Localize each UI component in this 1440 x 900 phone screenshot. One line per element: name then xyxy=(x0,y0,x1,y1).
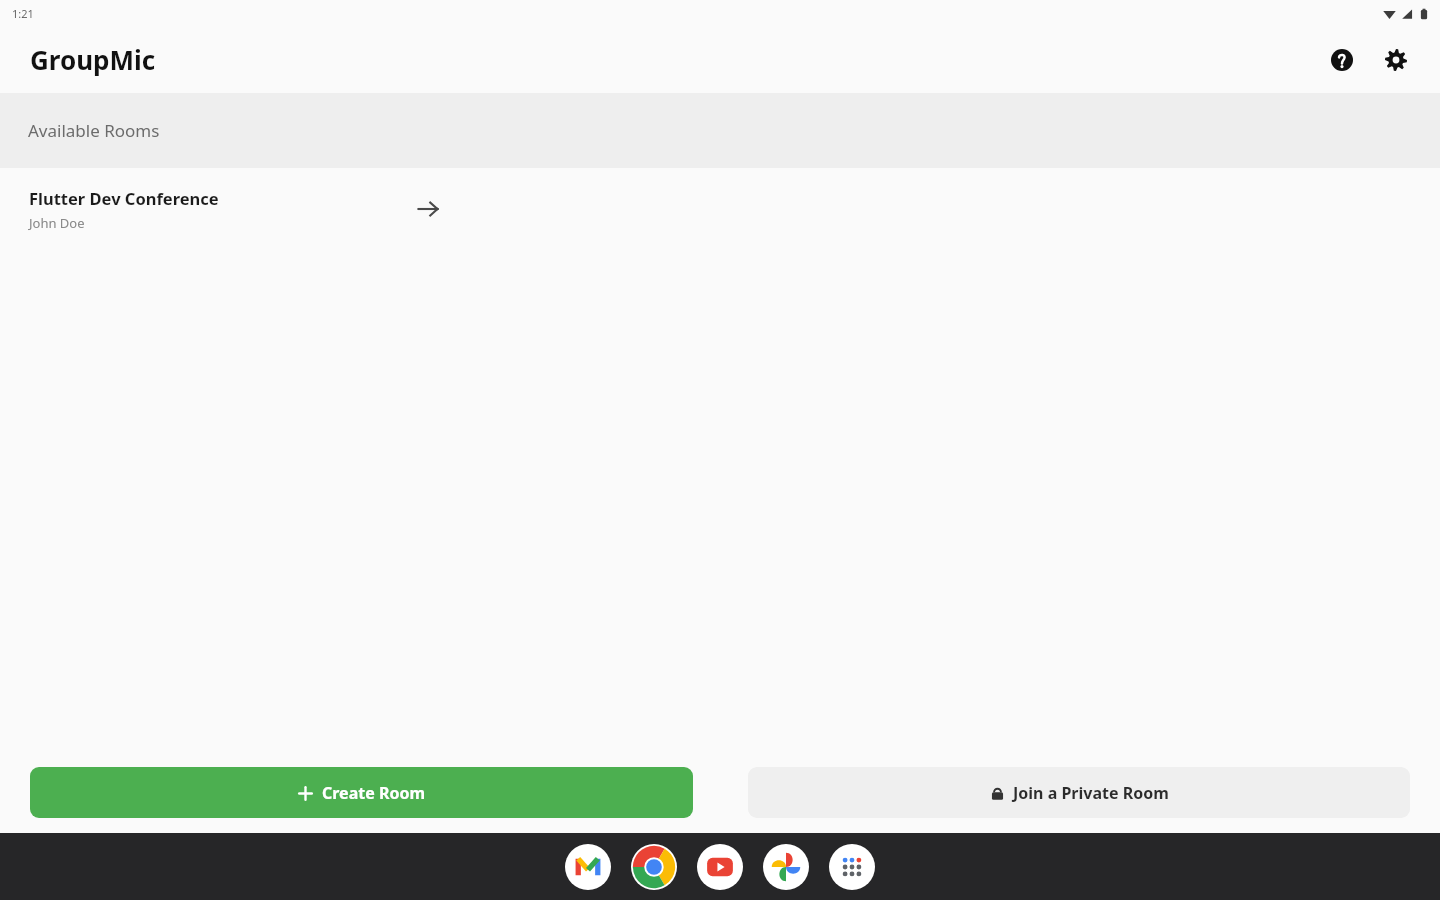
button[interactable]: Settings xyxy=(1372,36,1420,84)
button[interactable]: Chrome xyxy=(630,843,678,891)
button[interactable]: Flutter Dev Conference xyxy=(0,168,1440,250)
button[interactable]: Create Room xyxy=(30,767,693,818)
button[interactable]: All apps xyxy=(828,843,876,891)
button[interactable]: Join a Private Room xyxy=(748,767,1410,818)
staticText: Join a Private Room xyxy=(1013,782,1169,804)
staticText: John Doe xyxy=(29,214,85,232)
button[interactable]: Gmail xyxy=(564,843,612,891)
staticText: Available Rooms xyxy=(28,119,160,142)
button[interactable]: Photos xyxy=(762,843,810,891)
staticText: 1:21 xyxy=(12,6,34,21)
button[interactable]: Help xyxy=(1318,36,1366,84)
button[interactable]: YouTube xyxy=(696,843,744,891)
staticText: Flutter Dev Conference xyxy=(29,187,219,209)
staticText: Create Room xyxy=(322,782,425,804)
staticText: GroupMic xyxy=(30,42,156,77)
